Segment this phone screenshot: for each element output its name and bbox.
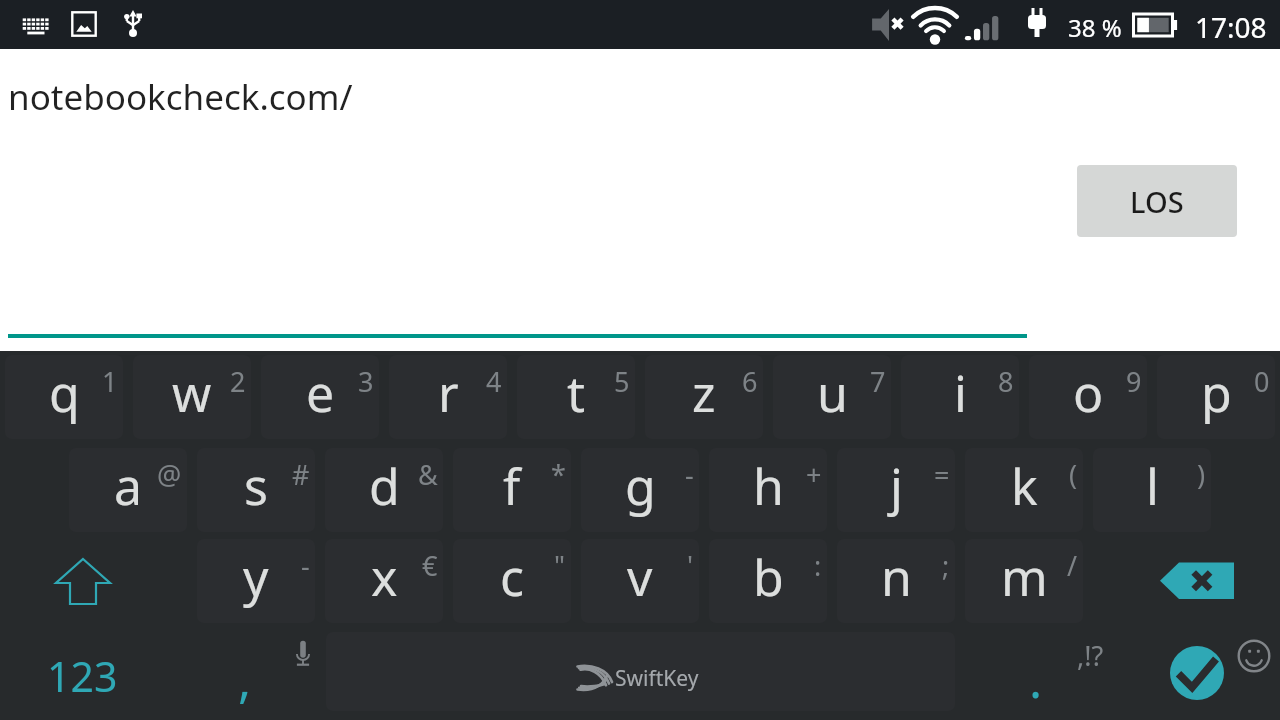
staticText: x (371, 543, 398, 611)
button[interactable]: x (325, 539, 443, 623)
button[interactable]: u (773, 355, 891, 439)
staticText: 5 (614, 363, 630, 400)
staticText: = (934, 456, 950, 493)
staticText: d (369, 452, 400, 520)
button[interactable]: Backspace (1093, 539, 1275, 623)
staticText: q (49, 359, 80, 427)
staticText: g (625, 452, 656, 520)
button[interactable]: k (965, 448, 1083, 532)
button[interactable]: 123 (5, 633, 160, 717)
staticText: " (554, 547, 566, 584)
staticText: . (1029, 646, 1043, 713)
button[interactable]: p (1157, 355, 1275, 439)
button[interactable]: v (581, 539, 699, 623)
staticText: l (1146, 452, 1159, 520)
staticText: e (306, 359, 335, 427)
staticText: 8 (998, 363, 1014, 400)
button[interactable]: Shift (5, 539, 165, 623)
staticText: ( (1069, 456, 1078, 493)
staticText: 2 (230, 363, 246, 400)
staticText: v (627, 543, 653, 611)
staticText: f (503, 452, 521, 520)
button[interactable]: f (453, 448, 571, 532)
staticText: - (685, 456, 694, 493)
button[interactable]: n (837, 539, 955, 623)
button[interactable]: s (197, 448, 315, 532)
button[interactable]: ,!? (1040, 613, 1140, 697)
button[interactable]: r (389, 355, 507, 439)
button[interactable]: , (190, 633, 300, 717)
button[interactable]: d (325, 448, 443, 532)
staticText: / (1067, 547, 1078, 584)
button[interactable]: LOS (1077, 165, 1237, 237)
staticText: 3 (358, 363, 374, 400)
button[interactable]: i (901, 355, 1019, 439)
staticText: r (438, 359, 459, 427)
button[interactable]: m (965, 539, 1083, 623)
staticText: z (692, 359, 716, 427)
staticText: ,!? (1077, 637, 1104, 674)
staticText: 7 (870, 363, 886, 400)
staticText: ' (687, 547, 694, 584)
staticText: 123 (47, 648, 118, 704)
staticText: i (954, 359, 967, 427)
button[interactable]: Voice input (285, 633, 321, 669)
staticText: 0 (1254, 363, 1270, 400)
staticText: n (881, 543, 912, 611)
staticText: w (172, 359, 212, 427)
staticText: SwiftKey (615, 664, 699, 693)
button[interactable]: g (581, 448, 699, 532)
staticText: - (301, 547, 310, 584)
button[interactable]: e (261, 355, 379, 439)
staticText: 17:08 (1195, 8, 1267, 46)
staticText: 9 (1126, 363, 1142, 400)
staticText: 4 (486, 363, 502, 400)
staticText: € (422, 547, 438, 584)
staticText: # (292, 456, 310, 493)
button[interactable]: b (709, 539, 827, 623)
staticText: * (551, 456, 566, 493)
staticText: , (238, 646, 252, 713)
button[interactable]: Space (326, 632, 955, 711)
staticText: notebookcheck.com/ (8, 73, 353, 121)
button[interactable]: q (5, 355, 123, 439)
button[interactable]: y (197, 539, 315, 623)
staticText: + (806, 456, 822, 493)
button[interactable]: . (986, 633, 1086, 717)
staticText: b (753, 543, 784, 611)
button[interactable]: z (645, 355, 763, 439)
staticText: p (1201, 359, 1232, 427)
staticText: 38 % (1068, 11, 1122, 44)
staticText: 1 (102, 363, 118, 400)
staticText: ; (942, 547, 950, 584)
staticText: & (418, 456, 438, 493)
button[interactable]: h (709, 448, 827, 532)
button[interactable]: c (453, 539, 571, 623)
button[interactable]: w (133, 355, 251, 439)
staticText: s (244, 452, 268, 520)
staticText: j (890, 452, 903, 520)
staticText: 6 (742, 363, 758, 400)
staticText: a (114, 452, 143, 520)
button[interactable]: l (1093, 448, 1211, 532)
button[interactable]: notebookcheck.com/ (8, 56, 1027, 338)
button[interactable]: j (837, 448, 955, 532)
button[interactable]: o (1029, 355, 1147, 439)
staticText: h (753, 452, 784, 520)
staticText: : (814, 547, 822, 584)
staticText: k (1011, 452, 1038, 520)
button[interactable]: Emoji (1237, 639, 1271, 673)
staticText: t (567, 359, 586, 427)
staticText: y (243, 543, 269, 611)
staticText: m (1001, 543, 1048, 611)
staticText: c (500, 543, 524, 611)
button[interactable]: t (517, 355, 635, 439)
staticText: @ (157, 456, 182, 493)
button[interactable]: a (69, 448, 187, 532)
staticText: ) (1197, 456, 1206, 493)
staticText: LOS (1130, 182, 1184, 221)
staticText: o (1073, 359, 1104, 427)
button[interactable]: Enter (1170, 646, 1224, 700)
staticText: u (817, 359, 848, 427)
